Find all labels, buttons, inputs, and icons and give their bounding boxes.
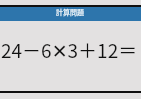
staticText: 計算問題 [56, 7, 84, 17]
button[interactable]: 24－6✕3＋12＝ [0, 22, 141, 91]
staticText: 24－6✕3＋12＝ [1, 36, 141, 64]
button[interactable]: 計算問題 [0, 7, 141, 21]
